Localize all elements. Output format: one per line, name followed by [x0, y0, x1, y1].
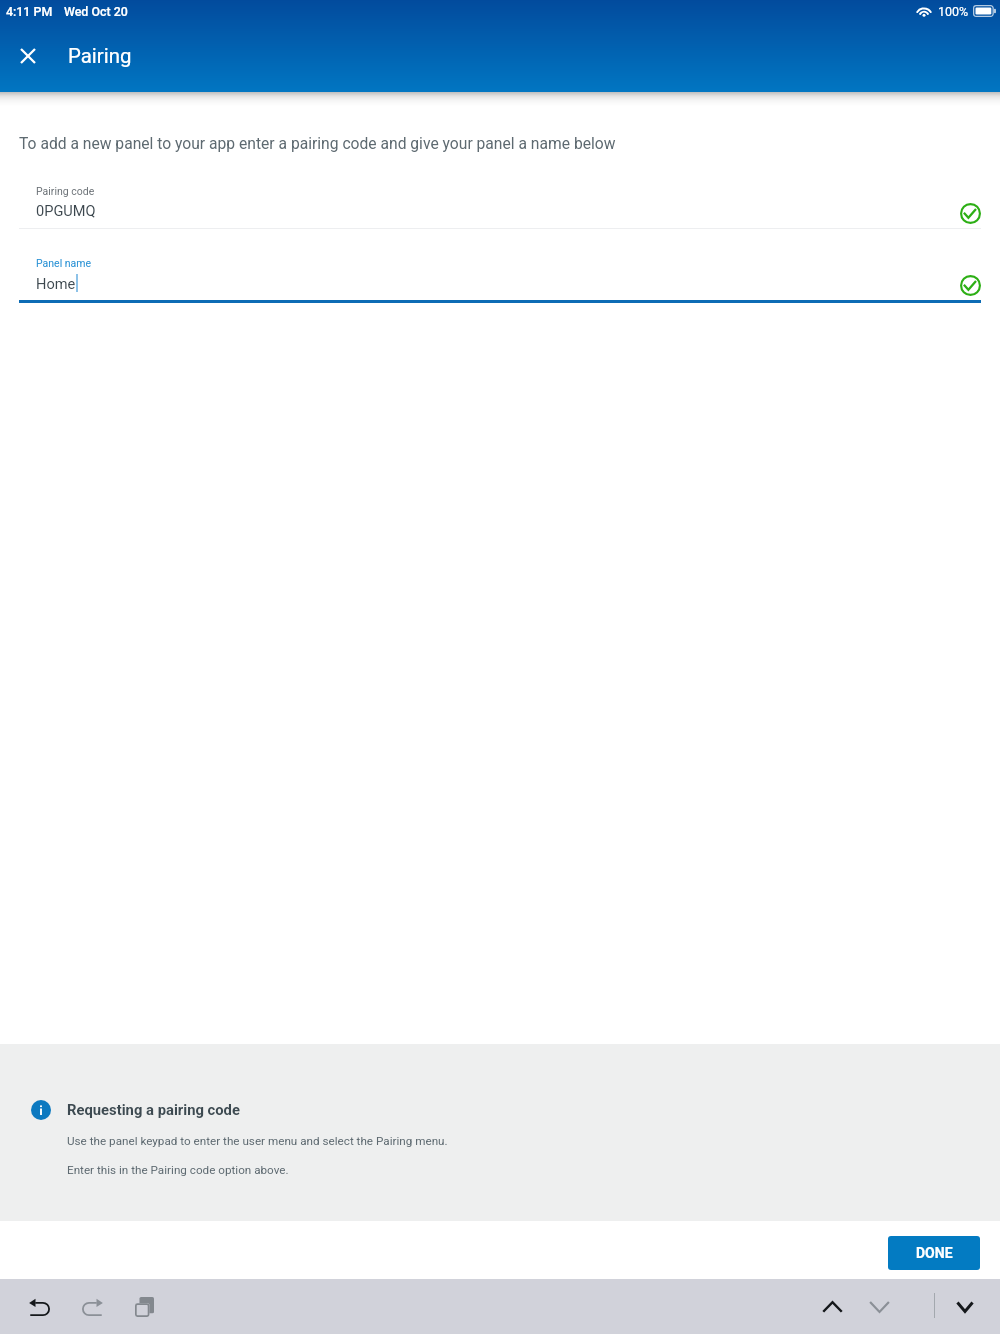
staticText: Use the panel keypad to enter the user m…	[67, 1134, 448, 1148]
button[interactable]: Panel name	[0, 250, 1000, 306]
button[interactable]: Undo	[16, 1284, 62, 1330]
staticText: Pairing	[68, 44, 132, 68]
staticText: Pairing code	[36, 185, 95, 197]
button[interactable]: Pairing code	[0, 178, 1000, 235]
button[interactable]: Previous field	[809, 1284, 855, 1330]
staticText: Enter this in the Pairing code option ab…	[67, 1163, 289, 1177]
button[interactable]: DONE	[888, 1236, 980, 1270]
button[interactable]: Redo	[69, 1284, 115, 1330]
staticText: Home	[36, 275, 76, 292]
staticText: Wed Oct 20	[64, 4, 128, 19]
button[interactable]: Hide keyboard	[942, 1284, 988, 1330]
staticText: 100%	[938, 4, 969, 19]
staticText: Requesting a pairing code	[67, 1101, 240, 1118]
button[interactable]: Next field	[856, 1284, 902, 1330]
staticText: 0PGUMQ	[36, 202, 96, 219]
staticText: Panel name	[36, 257, 92, 269]
button[interactable]: Close	[8, 36, 48, 76]
staticText: To add a new panel to your app enter a p…	[19, 134, 616, 152]
staticText: DONE	[916, 1245, 953, 1261]
staticText: 4:11 PM	[6, 4, 53, 19]
button[interactable]: Clipboard	[121, 1284, 167, 1330]
